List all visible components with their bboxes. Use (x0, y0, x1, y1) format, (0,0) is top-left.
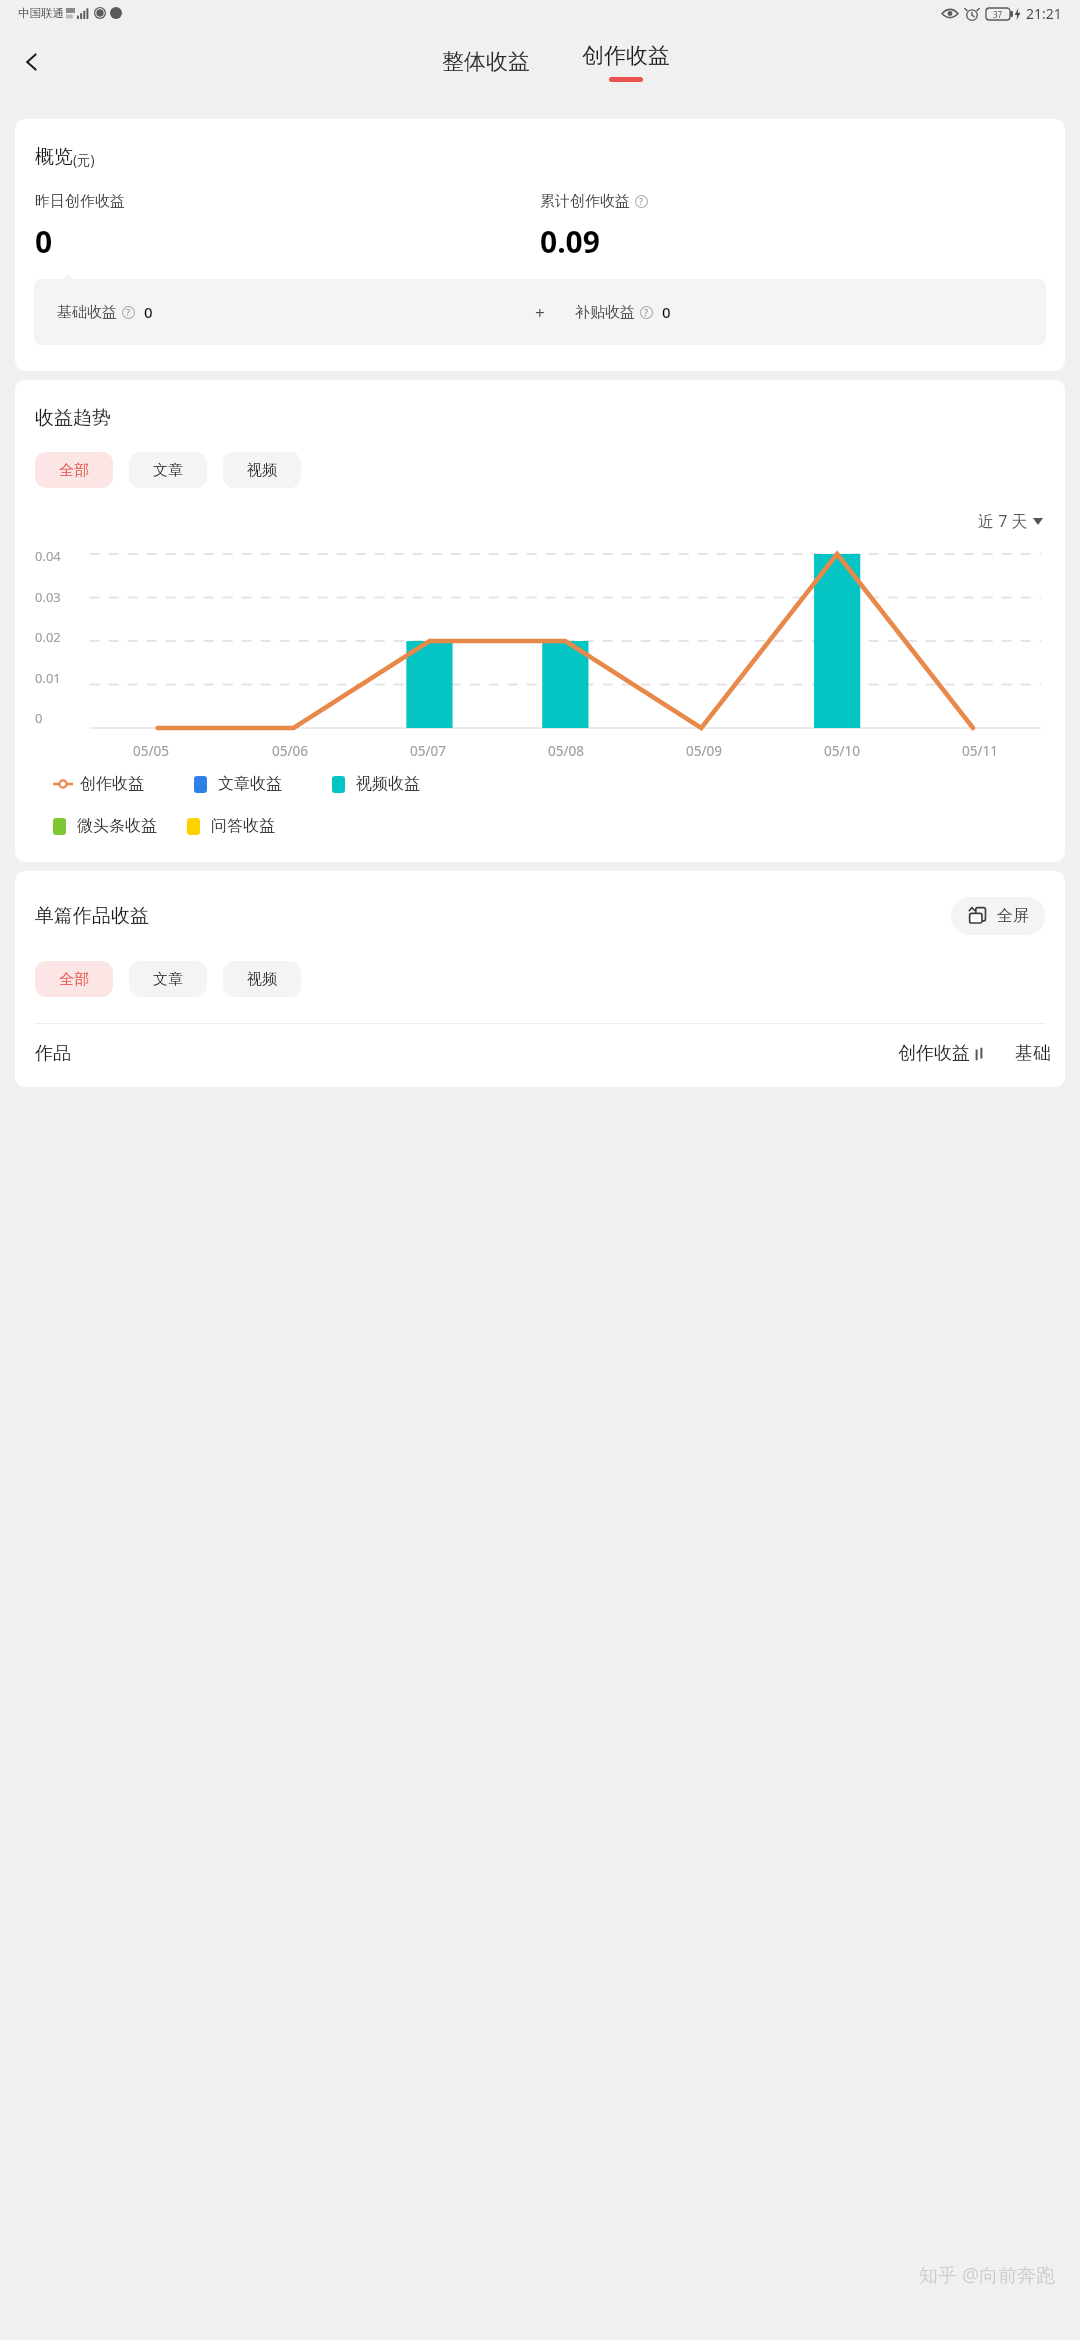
staticText: 视频收益 (356, 774, 420, 794)
staticText: 补贴收益 (575, 303, 635, 322)
staticText: 05/05 (133, 742, 169, 760)
staticText: ? (644, 306, 649, 319)
staticText: 05/09 (686, 742, 722, 760)
staticText: 作品 (35, 1042, 898, 1065)
staticText: 基础 (1015, 1042, 1051, 1065)
staticText: 0.03 (35, 588, 61, 606)
staticText: 0.02 (35, 628, 61, 646)
staticText: 单篇作品收益 (35, 904, 149, 928)
staticText: 视频 (247, 461, 277, 480)
staticText: 文章 (153, 461, 183, 480)
button[interactable]: 视频 (223, 452, 301, 488)
staticText: + (535, 301, 545, 324)
staticText: 知乎 @向前奔跑 (919, 2262, 1056, 2288)
staticText: 问答收益 (211, 816, 275, 836)
staticText: 创作收益 (582, 42, 670, 70)
button[interactable]: 文章收益 (194, 774, 282, 794)
button[interactable]: 创作收益 (568, 40, 684, 84)
staticText: 视频 (247, 970, 277, 989)
button[interactable]: 全屏 (951, 897, 1045, 935)
button[interactable]: 近 7 天 (15, 510, 1043, 532)
staticText: 收益趋势 (35, 406, 111, 430)
staticText: 概览 (35, 145, 73, 169)
button[interactable]: 文章 (129, 961, 207, 997)
button[interactable]: 返回 (10, 40, 54, 84)
button[interactable]: 整体收益 (428, 42, 544, 82)
staticText: 文章收益 (218, 774, 282, 794)
staticText: 0 (144, 302, 153, 322)
staticText: 05/10 (824, 742, 860, 760)
staticText: 创作收益 (80, 774, 144, 794)
button[interactable]: 基础收益 (34, 279, 1046, 345)
button[interactable]: 微头条收益 (53, 816, 157, 836)
staticText: ? (639, 195, 644, 208)
staticText: 05/07 (410, 742, 446, 760)
button[interactable]: 视频 (223, 961, 301, 997)
staticText: 基础收益 (57, 303, 117, 322)
staticText: 全部 (59, 461, 89, 480)
staticText: 文章 (153, 970, 183, 989)
staticText: 累计创作收益 (540, 192, 630, 211)
staticText: 05/08 (548, 742, 584, 760)
staticText: 37 (993, 9, 1003, 20)
staticText: 中国联通 (18, 6, 64, 20)
staticText: 05/11 (962, 742, 998, 760)
staticText: 全屏 (997, 906, 1029, 926)
staticText: 全部 (59, 970, 89, 989)
staticText: 05/06 (272, 742, 308, 760)
button[interactable]: 创作收益 (53, 774, 144, 794)
staticText: 0 (662, 302, 671, 322)
staticText: 创作收益 (898, 1042, 970, 1065)
staticText: 0.04 (35, 547, 61, 565)
staticText: (元) (73, 151, 95, 169)
button[interactable]: 文章 (129, 452, 207, 488)
staticText: 微头条收益 (77, 816, 157, 836)
staticText: 0 (35, 709, 43, 727)
staticText: ? (126, 306, 131, 319)
staticText: 整体收益 (442, 48, 530, 76)
button[interactable]: 视频收益 (332, 774, 420, 794)
staticText: 0 (35, 221, 53, 262)
staticText: 21:21 (1026, 4, 1062, 23)
staticText: 0.09 (540, 221, 600, 262)
button[interactable]: 问答收益 (187, 816, 275, 836)
button[interactable]: 全部 (35, 961, 113, 997)
staticText: 0.01 (35, 669, 61, 687)
staticText: 昨日创作收益 (35, 192, 125, 211)
button[interactable]: 全部 (35, 452, 113, 488)
staticText: 近 7 天 (978, 510, 1028, 532)
